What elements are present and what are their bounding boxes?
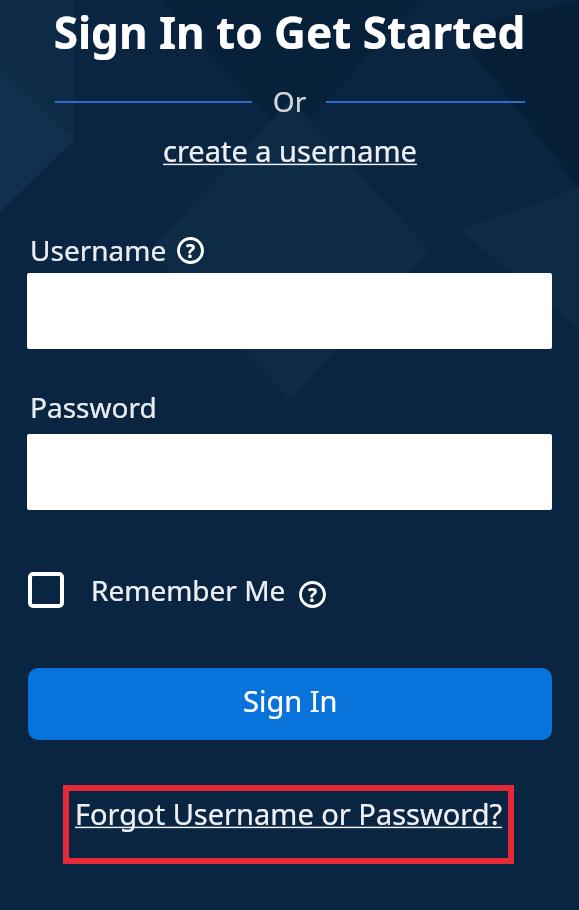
button[interactable]: Sign In [28, 668, 552, 740]
staticText: Remember Me [91, 571, 286, 609]
button[interactable] [28, 572, 64, 608]
staticText: Sign In to Get Started [0, 2, 579, 62]
staticText: Username [30, 231, 167, 269]
staticText: Forgot Username or Password? [75, 794, 503, 833]
button[interactable]: ? [299, 581, 326, 608]
button[interactable]: ? [177, 237, 204, 264]
staticText: Or [0, 82, 579, 120]
button[interactable]: Forgot Username or Password? [63, 785, 514, 864]
button[interactable]: create a username [163, 131, 417, 170]
staticText: ? [186, 238, 196, 264]
staticText: Sign In [243, 681, 338, 720]
staticText: ? [308, 582, 318, 608]
staticText: Password [30, 388, 157, 426]
